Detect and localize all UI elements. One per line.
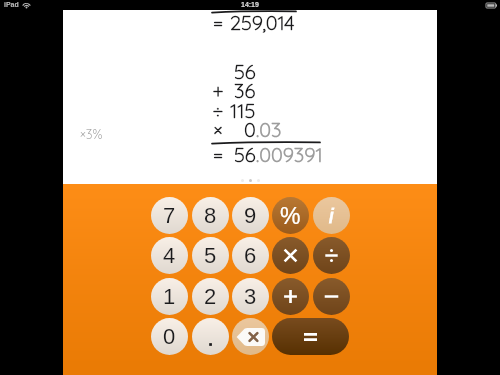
staticText: ×3% bbox=[80, 126, 103, 142]
staticText: = bbox=[211, 142, 225, 167]
button[interactable]: Info bbox=[313, 197, 350, 234]
button[interactable]: Multiply bbox=[272, 237, 309, 274]
button[interactable]: % bbox=[272, 197, 309, 234]
button[interactable]: Backspace bbox=[232, 318, 269, 355]
staticText: 1 bbox=[163, 284, 176, 309]
staticText: iPad bbox=[4, 1, 19, 9]
staticText: 0 bbox=[163, 324, 176, 349]
staticText: + bbox=[211, 78, 225, 103]
staticText: 0 bbox=[244, 117, 256, 142]
staticText: 259,014 bbox=[230, 10, 295, 35]
button[interactable]: Decimal point bbox=[192, 318, 229, 355]
staticText: 6 bbox=[244, 243, 257, 268]
staticText: % bbox=[280, 203, 301, 229]
button[interactable] bbox=[272, 318, 349, 355]
staticText: 14:19 bbox=[241, 1, 259, 9]
staticText: 36 bbox=[234, 78, 256, 103]
staticText: 56 bbox=[234, 142, 256, 167]
staticText: 9 bbox=[244, 203, 257, 228]
button[interactable]: 0 bbox=[151, 318, 188, 355]
staticText: .009391 bbox=[256, 142, 323, 167]
button[interactable]: Divide bbox=[313, 237, 350, 274]
staticText: 4 bbox=[163, 243, 176, 268]
staticText: 3 bbox=[244, 284, 257, 309]
button[interactable]: 7 bbox=[151, 197, 188, 234]
staticText: × bbox=[211, 117, 225, 142]
staticText: 8 bbox=[204, 203, 217, 228]
button[interactable]: 2 bbox=[192, 278, 229, 315]
button[interactable]: 8 bbox=[192, 197, 229, 234]
button[interactable]: 6 bbox=[232, 237, 269, 274]
staticText: ÷ bbox=[211, 98, 225, 123]
staticText: = bbox=[211, 10, 225, 35]
button[interactable]: 1 bbox=[151, 278, 188, 315]
staticText: 56 bbox=[234, 59, 256, 84]
button[interactable]: Minus bbox=[313, 278, 350, 315]
staticText: 115 bbox=[230, 98, 256, 123]
staticText: 7 bbox=[163, 203, 176, 228]
staticText: .03 bbox=[256, 117, 282, 142]
button[interactable]: 5 bbox=[192, 237, 229, 274]
button[interactable]: 9 bbox=[232, 197, 269, 234]
staticText: 2 bbox=[204, 284, 217, 309]
staticText: 5 bbox=[204, 243, 217, 268]
button[interactable]: 4 bbox=[151, 237, 188, 274]
staticText: i bbox=[329, 205, 334, 227]
button[interactable]: 3 bbox=[232, 278, 269, 315]
button[interactable]: Plus bbox=[272, 278, 309, 315]
